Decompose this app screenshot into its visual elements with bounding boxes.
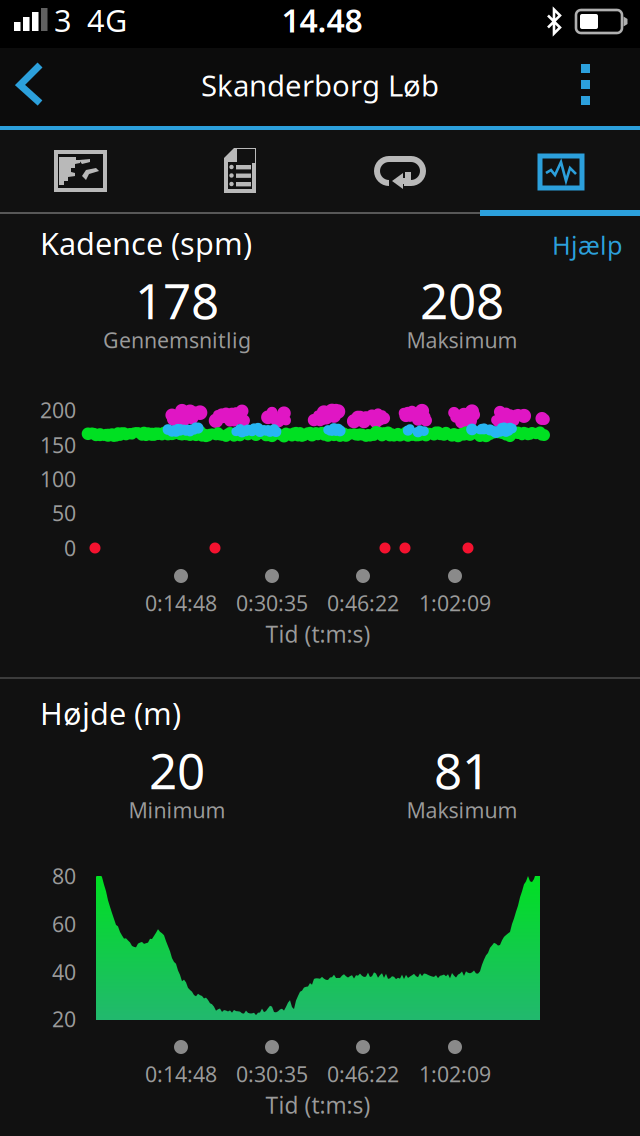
staticText: 0:46:22 bbox=[327, 589, 399, 617]
staticText: 0:14:48 bbox=[145, 589, 217, 617]
staticText: 14.48 bbox=[281, 0, 362, 41]
staticText: 40 bbox=[52, 958, 76, 986]
staticText: Tid (t:m:s) bbox=[265, 619, 370, 649]
staticText: 20 bbox=[149, 737, 205, 803]
staticText: Minimum bbox=[128, 796, 225, 824]
staticText: 208 bbox=[420, 267, 504, 333]
staticText: 0:14:48 bbox=[145, 1060, 217, 1088]
button[interactable]: Details bbox=[0, 0, 640, 1136]
staticText: Maksimum bbox=[406, 326, 517, 354]
staticText: 178 bbox=[135, 267, 219, 333]
staticText: Hjælp bbox=[552, 228, 623, 262]
staticText: 80 bbox=[52, 862, 76, 890]
staticText: 0 bbox=[64, 534, 76, 562]
staticText: 150 bbox=[40, 431, 76, 459]
staticText: Tid (t:m:s) bbox=[265, 1090, 370, 1120]
staticText: 20 bbox=[52, 1005, 76, 1033]
button[interactable]: Map bbox=[0, 0, 640, 1136]
staticText: 3 bbox=[54, 0, 72, 40]
button[interactable]: Charts bbox=[0, 0, 640, 1136]
staticText: Maksimum bbox=[406, 796, 517, 824]
staticText: 81 bbox=[434, 737, 490, 803]
staticText: 4G bbox=[87, 0, 127, 40]
staticText: Skanderborg Løb bbox=[201, 65, 439, 104]
staticText: 60 bbox=[52, 910, 76, 938]
button[interactable]: Back bbox=[0, 0, 640, 1136]
staticText: Kadence (spm) bbox=[40, 223, 252, 263]
staticText: 0:46:22 bbox=[327, 1060, 399, 1088]
staticText: 50 bbox=[52, 499, 76, 527]
staticText: Gennemsnitlig bbox=[103, 326, 251, 354]
button[interactable]: Hjælp bbox=[0, 0, 640, 1136]
staticText: 0:30:35 bbox=[236, 589, 308, 617]
staticText: 1:02:09 bbox=[419, 589, 491, 617]
button[interactable]: Laps bbox=[0, 0, 640, 1136]
button[interactable]: More options bbox=[0, 0, 640, 1136]
staticText: 100 bbox=[40, 465, 76, 493]
staticText: 0:30:35 bbox=[236, 1060, 308, 1088]
staticText: 200 bbox=[40, 396, 76, 424]
staticText: 1:02:09 bbox=[419, 1060, 491, 1088]
staticText: Højde (m) bbox=[40, 693, 181, 733]
